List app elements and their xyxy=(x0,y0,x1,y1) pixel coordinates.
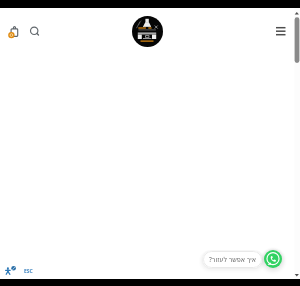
button[interactable]: Menu xyxy=(272,22,290,40)
button[interactable]: WhatsApp xyxy=(264,250,282,268)
button[interactable]: Cart xyxy=(5,23,23,41)
button[interactable]: Search xyxy=(27,23,43,39)
staticText: ESC xyxy=(24,268,33,275)
button[interactable]: Accessibility xyxy=(2,262,18,278)
staticText: איך אפשר לעזור? xyxy=(209,255,256,264)
button[interactable]: איך אפשר לעזור? xyxy=(203,251,262,268)
button[interactable]: ESC xyxy=(24,268,33,275)
button[interactable]: Home logo xyxy=(132,16,163,47)
